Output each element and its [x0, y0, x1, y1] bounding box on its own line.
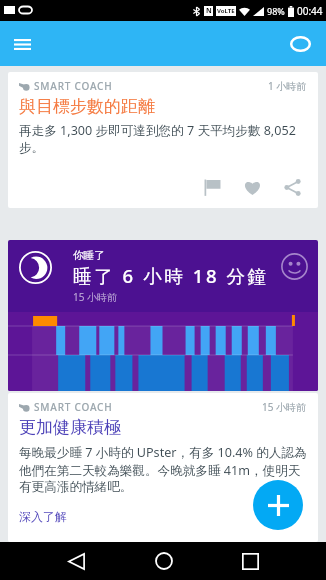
button[interactable]: Back [33, 542, 120, 580]
button[interactable]: Like [238, 173, 267, 202]
button[interactable]: Mood [280, 252, 308, 280]
button[interactable]: Share [278, 173, 307, 202]
staticText: 每晚最少睡 7 小時的 UPster，有多 10.4% 的人認為他們在第二天較為… [19, 444, 307, 495]
staticText: 深入了解 [19, 509, 67, 524]
button[interactable]: SMART COACH [8, 72, 318, 208]
staticText: 睡了 6 小時 18 分鐘 [73, 263, 269, 288]
button[interactable]: Recents [207, 542, 294, 580]
staticText: SMART COACH [34, 400, 113, 414]
staticText: 15 小時前 [73, 290, 118, 304]
button[interactable]: Menu [4, 26, 40, 62]
staticText: N [206, 6, 212, 16]
button[interactable]: Add [253, 480, 303, 530]
button[interactable]: SMART COACH [8, 393, 318, 542]
staticText: 98% [267, 5, 285, 17]
staticText: 15 小時前 [262, 400, 307, 414]
button[interactable]: Flag [198, 173, 227, 202]
button[interactable]: 你睡了 [8, 240, 318, 391]
staticText: 1 小時前 [268, 79, 307, 93]
button[interactable]: Home [120, 542, 207, 580]
staticText: VoLTE [217, 7, 235, 15]
staticText: 更加健康積極 [19, 417, 121, 438]
staticText: 再走多 1,300 步即可達到您的 7 天平均步數 8,052 步。 [19, 122, 307, 156]
button[interactable]: Sync [282, 26, 318, 62]
staticText: 與目標步數的距離 [19, 96, 155, 117]
button[interactable]: 深入了解 [19, 509, 67, 524]
staticText: SMART COACH [34, 79, 113, 93]
staticText: 你睡了 [73, 249, 105, 262]
staticText: 00:44 [297, 4, 323, 18]
